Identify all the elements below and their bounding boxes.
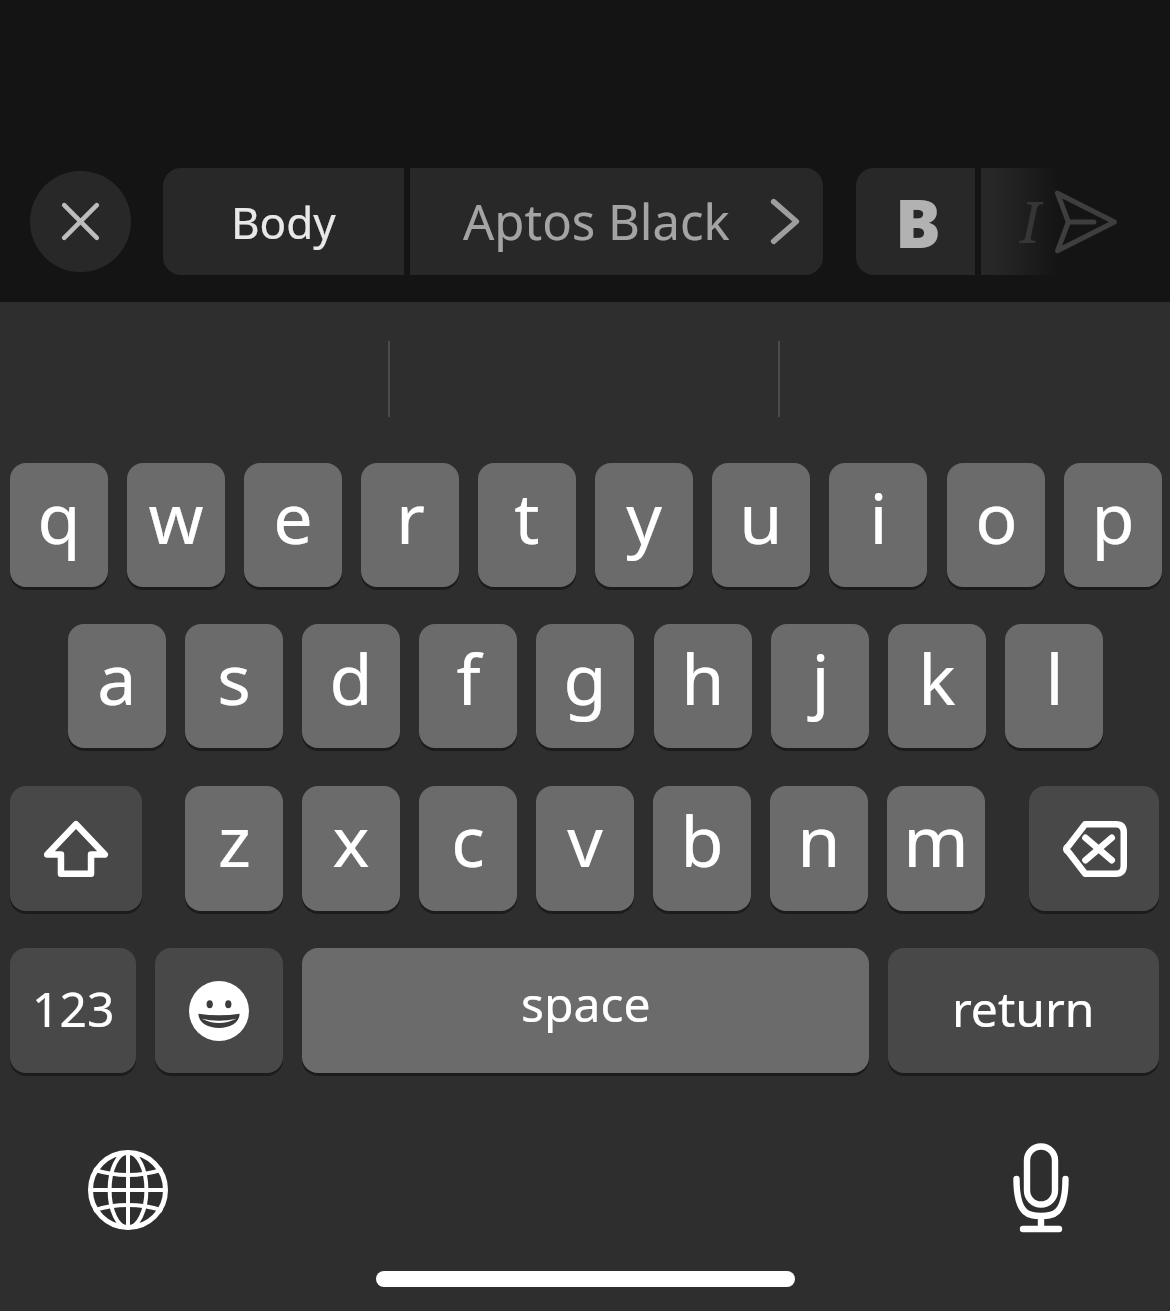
staticText: r xyxy=(396,469,425,564)
button[interactable]: r xyxy=(361,463,459,587)
button[interactable]: q xyxy=(10,463,108,587)
button[interactable]: m xyxy=(887,786,985,911)
staticText: e xyxy=(273,469,313,564)
button[interactable]: 123 xyxy=(10,948,136,1073)
staticText: x xyxy=(332,792,370,887)
staticText: a xyxy=(97,630,137,725)
button[interactable]: Aptos Black xyxy=(410,168,823,275)
button[interactable]: a xyxy=(68,624,166,748)
staticText: c xyxy=(451,792,485,887)
button[interactable]: Body xyxy=(163,168,404,275)
staticText: z xyxy=(218,792,251,887)
button[interactable]: c xyxy=(419,786,517,911)
staticText: b xyxy=(680,792,724,887)
button[interactable]: t xyxy=(478,463,576,587)
button[interactable]: I xyxy=(981,168,1170,275)
button[interactable]: u xyxy=(712,463,810,587)
staticText: w xyxy=(148,469,204,564)
button[interactable]: b xyxy=(653,786,751,911)
staticText: y xyxy=(626,469,662,564)
button[interactable]: Backspace xyxy=(1029,786,1159,911)
staticText: B xyxy=(895,175,941,268)
staticText: n xyxy=(797,792,841,887)
button[interactable]: s xyxy=(185,624,283,748)
button[interactable]: g xyxy=(536,624,634,748)
staticText: g xyxy=(563,630,607,725)
button[interactable]: e xyxy=(244,463,342,587)
staticText: v xyxy=(567,792,603,887)
button[interactable]: o xyxy=(947,463,1045,587)
button[interactable]: z xyxy=(185,786,283,911)
staticText: j xyxy=(811,630,830,725)
staticText: s xyxy=(217,630,251,725)
staticText: return xyxy=(952,976,1095,1041)
button[interactable]: v xyxy=(536,786,634,911)
staticText: m xyxy=(903,792,969,887)
button[interactable]: Emoji xyxy=(155,948,283,1073)
button[interactable]: p xyxy=(1064,463,1162,587)
button[interactable]: Change keyboard language xyxy=(78,1140,177,1239)
button[interactable]: k xyxy=(888,624,986,748)
button[interactable]: d xyxy=(302,624,400,748)
button[interactable]: return xyxy=(888,948,1159,1073)
staticText: t xyxy=(514,469,540,564)
button[interactable]: f xyxy=(419,624,517,748)
staticText: h xyxy=(681,630,725,725)
staticText: f xyxy=(456,630,481,725)
staticText: Body xyxy=(231,192,336,252)
button[interactable]: n xyxy=(770,786,868,911)
staticText: o xyxy=(975,469,1018,564)
staticText: p xyxy=(1091,469,1135,564)
button[interactable]: h xyxy=(654,624,752,748)
button[interactable]: Shift xyxy=(10,786,142,911)
staticText: k xyxy=(918,630,956,725)
button[interactable]: Send xyxy=(1053,190,1117,254)
button[interactable]: w xyxy=(127,463,225,587)
staticText: I xyxy=(1020,183,1041,259)
staticText: u xyxy=(739,469,783,564)
button[interactable]: Voice input xyxy=(991,1138,1091,1238)
staticText: Aptos Black xyxy=(463,188,730,255)
button[interactable]: y xyxy=(595,463,693,587)
button[interactable]: l xyxy=(1005,624,1103,748)
staticText: l xyxy=(1045,630,1064,725)
button[interactable]: space xyxy=(302,948,869,1073)
button[interactable]: i xyxy=(829,463,927,587)
staticText: d xyxy=(329,630,373,725)
staticText: q xyxy=(37,469,81,564)
button[interactable]: x xyxy=(302,786,400,911)
staticText: 123 xyxy=(32,976,115,1041)
staticText: space xyxy=(521,971,651,1036)
button[interactable]: Close xyxy=(30,171,131,272)
button[interactable]: j xyxy=(771,624,869,748)
button[interactable]: B xyxy=(856,168,975,275)
staticText: i xyxy=(869,469,888,564)
